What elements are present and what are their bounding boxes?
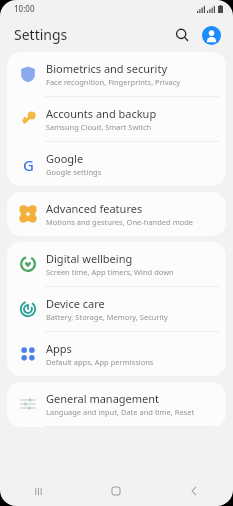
- staticText: 10:00: [14, 3, 35, 14]
- staticText: Advanced features: [46, 201, 143, 216]
- staticText: Apps: [46, 341, 72, 356]
- button[interactable]: Account: [198, 22, 224, 48]
- button[interactable]: Search: [169, 22, 195, 48]
- staticText: Samsung Cloud, Smart Switch: [46, 122, 152, 132]
- button[interactable]: Recent apps: [0, 476, 77, 506]
- staticText: Digital wellbeing: [46, 251, 133, 266]
- button[interactable]: Home: [77, 476, 155, 506]
- staticText: Battery, Storage, Memory, Security: [46, 312, 168, 322]
- button[interactable]: Apps: [7, 332, 226, 376]
- staticText: Google settings: [46, 167, 102, 177]
- staticText: Google: [46, 151, 84, 166]
- button[interactable]: G: [7, 142, 226, 186]
- button[interactable]: Back: [155, 476, 233, 506]
- staticText: Motions and gestures, One-handed mode: [46, 217, 194, 227]
- staticText: Accounts and backup: [46, 106, 157, 121]
- staticText: Language and input, Date and time, Reset: [46, 407, 195, 417]
- button[interactable]: Device care: [7, 287, 226, 331]
- button[interactable]: Advanced features: [7, 192, 226, 236]
- staticText: G: [23, 155, 34, 173]
- staticText: General management: [46, 391, 160, 406]
- staticText: Default apps, App permissions: [46, 357, 154, 367]
- staticText: Biometrics and security: [46, 61, 167, 76]
- button[interactable]: Biometrics and security: [7, 52, 226, 96]
- staticText: Screen time, App timers, Wind down: [46, 267, 174, 277]
- button[interactable]: General management: [7, 382, 226, 426]
- button[interactable]: Accounts and backup: [7, 97, 226, 141]
- button[interactable]: Digital wellbeing: [7, 242, 226, 286]
- staticText: Face recognition, Fingerprints, Privacy: [46, 77, 181, 87]
- staticText: Device care: [46, 296, 105, 311]
- staticText: Settings: [14, 25, 68, 44]
